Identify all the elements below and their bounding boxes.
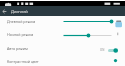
button[interactable]: Контрастный цвет: [0, 56, 125, 66]
button[interactable]: Slider: [63, 32, 112, 39]
button[interactable]: Back: [0, 7, 9, 16]
button[interactable]: Ночной режим: [0, 29, 125, 39]
staticText: Авто режим: [7, 46, 28, 51]
button[interactable]: Auto mode toggle: [0, 45, 125, 55]
button[interactable]: Авто режим: [0, 43, 125, 53]
button[interactable]: Дневной режим: [0, 16, 125, 26]
staticText: Дневной режим: [7, 19, 36, 24]
button[interactable]: Colour swatch: [112, 57, 119, 64]
button[interactable]: Slider: [63, 18, 112, 25]
staticText: Ночной режим: [7, 32, 34, 37]
button[interactable]: Back: [0, 6, 125, 16]
staticText: ON: [100, 48, 105, 52]
staticText: Контрастный цвет: [7, 59, 39, 64]
staticText: Дисплей: [11, 9, 28, 14]
